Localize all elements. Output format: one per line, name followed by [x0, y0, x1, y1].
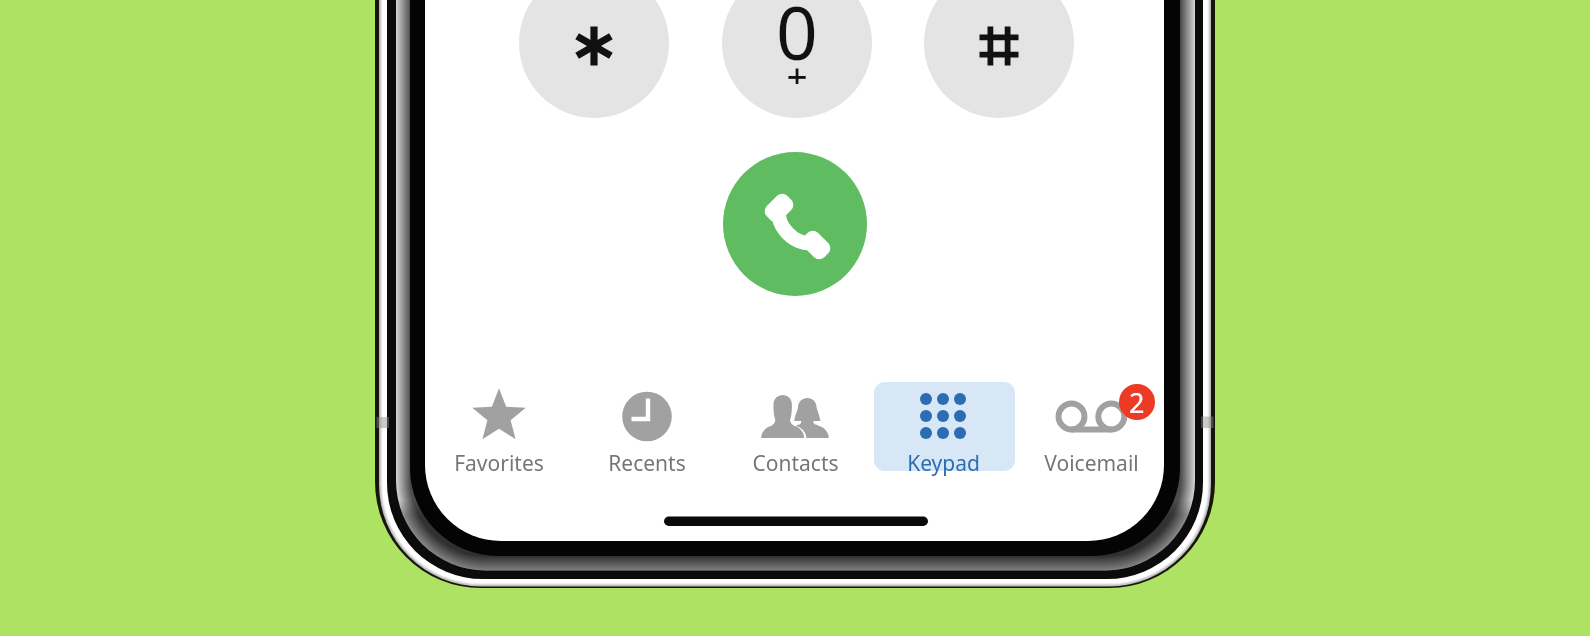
button[interactable]: Call: [723, 152, 867, 296]
staticText: Contacts: [752, 449, 839, 478]
staticText: 2: [1129, 384, 1145, 420]
staticText: 0: [776, 0, 818, 66]
button[interactable]: Voicemail: [1021, 382, 1161, 471]
button[interactable]: Star: [519, 0, 669, 118]
button[interactable]: Recents: [577, 382, 717, 471]
button[interactable]: Contacts: [725, 382, 865, 471]
staticText: Recents: [608, 449, 686, 478]
staticText: Voicemail: [1044, 449, 1139, 478]
button[interactable]: Pound: [924, 0, 1074, 118]
button[interactable]: 0: [722, 0, 872, 118]
button[interactable]: Keypad: [873, 382, 1013, 471]
staticText: Keypad: [907, 449, 980, 478]
staticText: Favorites: [454, 449, 544, 478]
button[interactable]: Favorites: [429, 382, 569, 471]
staticText: +: [786, 50, 808, 84]
